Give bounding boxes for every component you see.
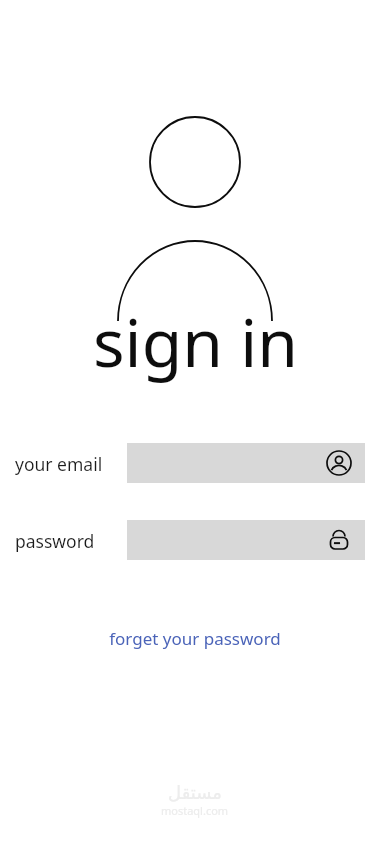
- button[interactable]: your email: [127, 443, 365, 483]
- staticText: مستقل: [168, 782, 222, 803]
- staticText: password: [15, 529, 95, 553]
- staticText: sign in: [93, 296, 298, 386]
- other: Password: [326, 527, 352, 553]
- button[interactable]: password: [127, 520, 365, 560]
- staticText: forget your password: [109, 627, 281, 650]
- other: Account: [326, 450, 352, 476]
- staticText: your email: [15, 452, 103, 476]
- staticText: mostaql.com: [161, 803, 229, 818]
- button[interactable]: forget your password: [99, 622, 291, 655]
